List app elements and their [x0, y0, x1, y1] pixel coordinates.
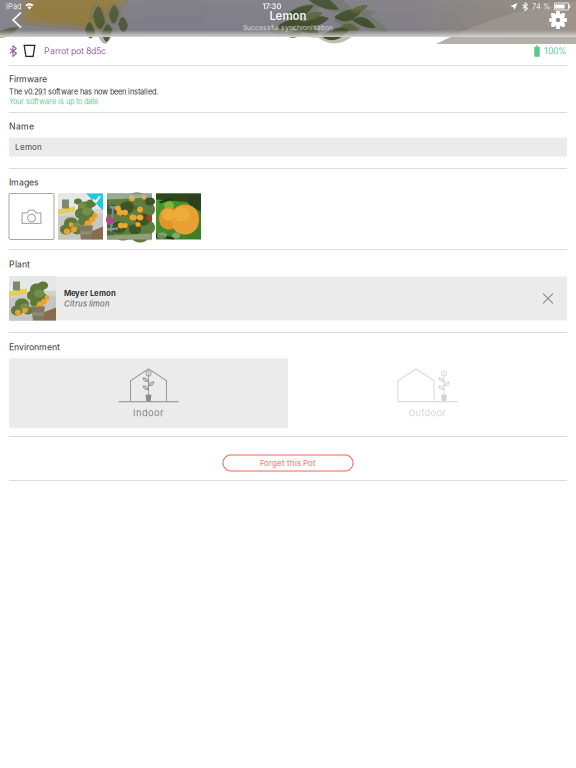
staticText: Forget this Pot — [260, 458, 316, 468]
button[interactable]: Back — [3, 9, 33, 31]
button[interactable]: Settings — [543, 9, 573, 31]
staticText: Images — [9, 177, 39, 187]
staticText: Indoor — [133, 407, 164, 418]
staticText: Your software is up to date — [9, 97, 98, 106]
staticText: Citrus limon — [64, 299, 110, 308]
staticText: 74 % — [532, 2, 550, 11]
button[interactable]: Parrot pot 8d5c — [0, 37, 576, 65]
staticText: Successful synchronisation — [243, 24, 333, 32]
button[interactable]: Outdoor — [288, 358, 567, 428]
staticText: 17:30 — [262, 2, 281, 11]
staticText: The v0.29.1 software has now been instal… — [9, 87, 158, 96]
staticText: Outdoor — [408, 407, 446, 418]
button[interactable]: Lemon — [9, 137, 567, 156]
staticText: Environment — [9, 342, 60, 352]
staticText: Meyer Lemon — [64, 289, 116, 298]
button[interactable]: Photo 3 — [156, 193, 201, 239]
staticText: Plant — [9, 259, 30, 269]
staticText: Lemon — [269, 9, 306, 23]
staticText: 100% — [544, 46, 567, 56]
button[interactable]: Photo 2 — [107, 193, 152, 239]
staticText: Parrot pot 8d5c — [44, 46, 106, 56]
button[interactable]: Photo 1, selected — [58, 193, 103, 239]
button[interactable]: Meyer Lemon — [9, 276, 567, 320]
button[interactable]: Add photo — [9, 193, 54, 239]
staticText: Name — [9, 121, 34, 131]
staticText: Lemon — [15, 142, 42, 152]
staticText: Firmware — [9, 74, 47, 84]
staticText: iPad — [6, 2, 21, 11]
button[interactable]: Indoor — [9, 358, 288, 428]
button[interactable]: Forget this Pot — [223, 455, 353, 471]
